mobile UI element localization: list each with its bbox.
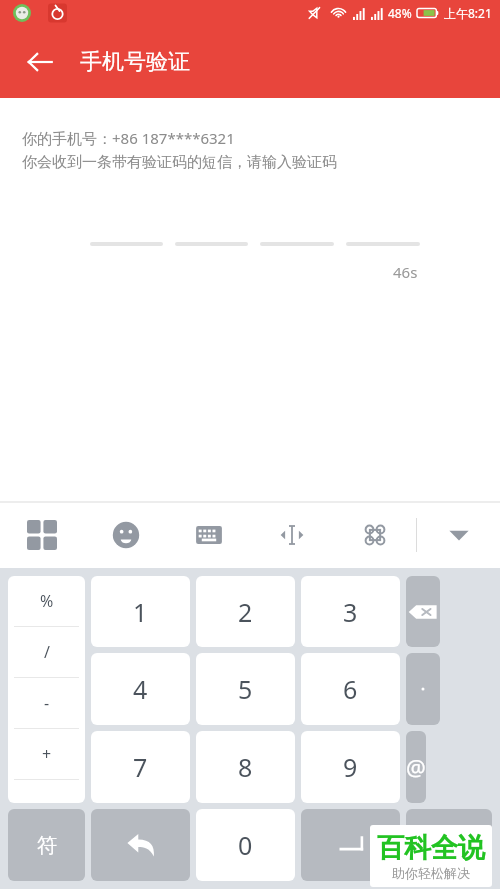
button[interactable]: 符 [8, 809, 85, 881]
staticText: 2 [238, 595, 253, 629]
button[interactable]: 8 [196, 731, 295, 803]
staticText: 符 [37, 833, 57, 858]
button[interactable]: 5 [196, 653, 295, 725]
button[interactable]: % [8, 576, 85, 626]
staticText: 5 [238, 672, 253, 706]
staticText: 百科全说 [377, 831, 485, 865]
button[interactable]: Hide keyboard [417, 502, 500, 568]
staticText: 你的手机号：+86 187****6321 [22, 128, 235, 148]
button[interactable]: @ [406, 731, 426, 803]
button[interactable]: Back [12, 34, 68, 90]
button[interactable]: 3 [301, 576, 400, 647]
staticText: 7 [133, 750, 148, 784]
staticText: % [40, 590, 54, 612]
button[interactable]: 0 [196, 809, 295, 881]
button[interactable]: Backspace [406, 576, 440, 647]
staticText: 8 [238, 750, 253, 784]
button[interactable]: Keyboard [167, 502, 250, 568]
button[interactable]: Shift back [91, 809, 190, 881]
button[interactable] [406, 809, 492, 881]
staticText: 9 [343, 750, 358, 784]
button[interactable]: 9 [301, 731, 400, 803]
staticText: 助你轻松解决 [392, 865, 470, 881]
button[interactable]: Period [406, 653, 440, 725]
staticText: @ [406, 752, 426, 782]
button[interactable]: 1 [91, 576, 190, 647]
button[interactable]: - [8, 678, 85, 728]
staticText: 你会收到一条带有验证码的短信，请输入验证码 [22, 153, 337, 172]
staticText: 0 [238, 828, 253, 862]
staticText: - [44, 692, 50, 714]
staticText: 上午8:21 [444, 5, 492, 21]
staticText: / [44, 641, 50, 663]
button[interactable]: 6 [301, 653, 400, 725]
button[interactable]: 7 [91, 731, 190, 803]
button[interactable]: + [8, 729, 85, 779]
button[interactable]: Apps [0, 502, 84, 568]
button[interactable]: Shortcuts [333, 502, 416, 568]
staticText: + [42, 743, 52, 765]
staticText: 4 [133, 672, 148, 706]
staticText: 48% [388, 5, 412, 21]
button[interactable]: / [8, 627, 85, 677]
button[interactable]: Emoji [84, 502, 167, 568]
staticText: 6 [343, 672, 358, 706]
staticText: 1 [133, 595, 148, 629]
staticText: 3 [343, 595, 358, 629]
button[interactable]: 46s [393, 262, 418, 282]
staticText: 手机号验证 [80, 48, 190, 76]
button[interactable]: 4 [91, 653, 190, 725]
button[interactable]: Move cursor [250, 502, 333, 568]
button[interactable]: Enter [301, 809, 400, 881]
button[interactable]: 2 [196, 576, 295, 647]
